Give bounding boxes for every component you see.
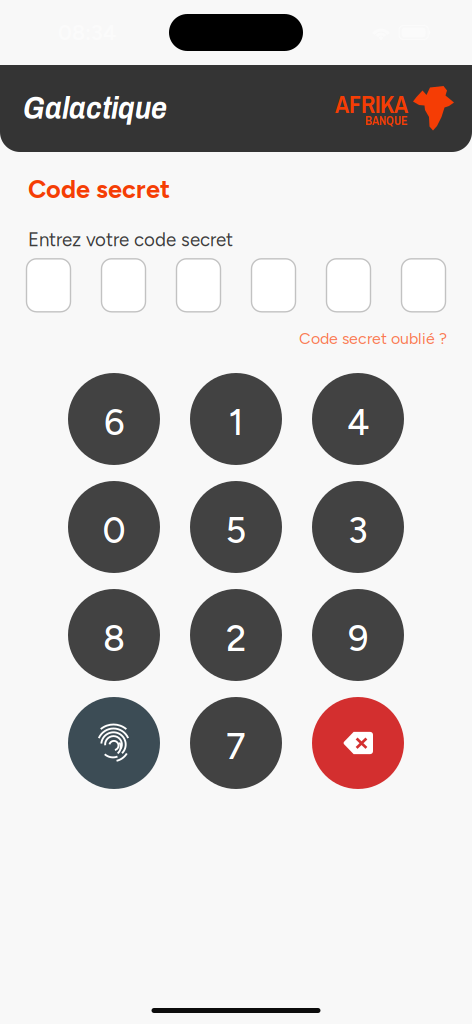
button[interactable]: 9	[312, 589, 404, 681]
button[interactable]: 6	[68, 373, 160, 465]
staticText: 6	[104, 401, 124, 444]
button[interactable]: Code secret oublié ?	[299, 329, 447, 348]
staticText: 1	[228, 401, 243, 444]
button[interactable]: 8	[68, 589, 160, 681]
button[interactable]: 1	[190, 373, 282, 465]
button[interactable]: 0	[68, 481, 160, 573]
staticText: 2	[226, 617, 246, 660]
button[interactable]: Authentification biométrique	[68, 697, 160, 789]
staticText: 0	[102, 509, 125, 552]
button[interactable]: 2	[190, 589, 282, 681]
staticText: 9	[348, 617, 368, 660]
staticText: Code secret oublié ?	[299, 329, 447, 348]
button[interactable]: 5	[190, 481, 282, 573]
staticText: 7	[226, 725, 246, 768]
staticText: 4	[347, 401, 369, 444]
button[interactable]: 4	[312, 373, 404, 465]
staticText: Code secret	[28, 174, 170, 204]
staticText: 5	[225, 509, 246, 552]
staticText: 8	[103, 617, 125, 660]
staticText: 3	[348, 509, 368, 552]
staticText: Entrez votre code secret	[28, 228, 233, 251]
button[interactable]: Effacer	[312, 697, 404, 789]
staticText: Galactique	[23, 92, 167, 125]
button[interactable]: 3	[312, 481, 404, 573]
button[interactable]: 7	[190, 697, 282, 789]
staticText: AFRIKA	[335, 88, 408, 121]
staticText: BANQUE	[365, 113, 408, 129]
